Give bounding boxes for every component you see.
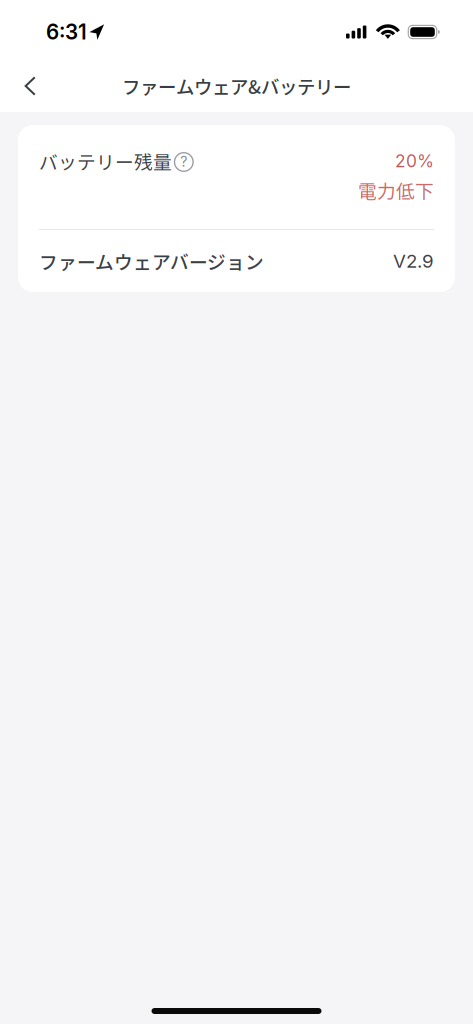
button[interactable]: Back: [8, 64, 52, 108]
staticText: バッテリー残量: [39, 147, 172, 174]
staticText: ファームウェアバージョン: [39, 247, 264, 274]
staticText: 20%: [395, 150, 434, 171]
staticText: V2.9: [393, 250, 434, 272]
staticText: 電力低下: [358, 176, 434, 203]
staticText: ?: [180, 153, 187, 170]
staticText: ファームウェア&バッテリー: [122, 73, 351, 99]
staticText: 6:31: [46, 19, 87, 44]
